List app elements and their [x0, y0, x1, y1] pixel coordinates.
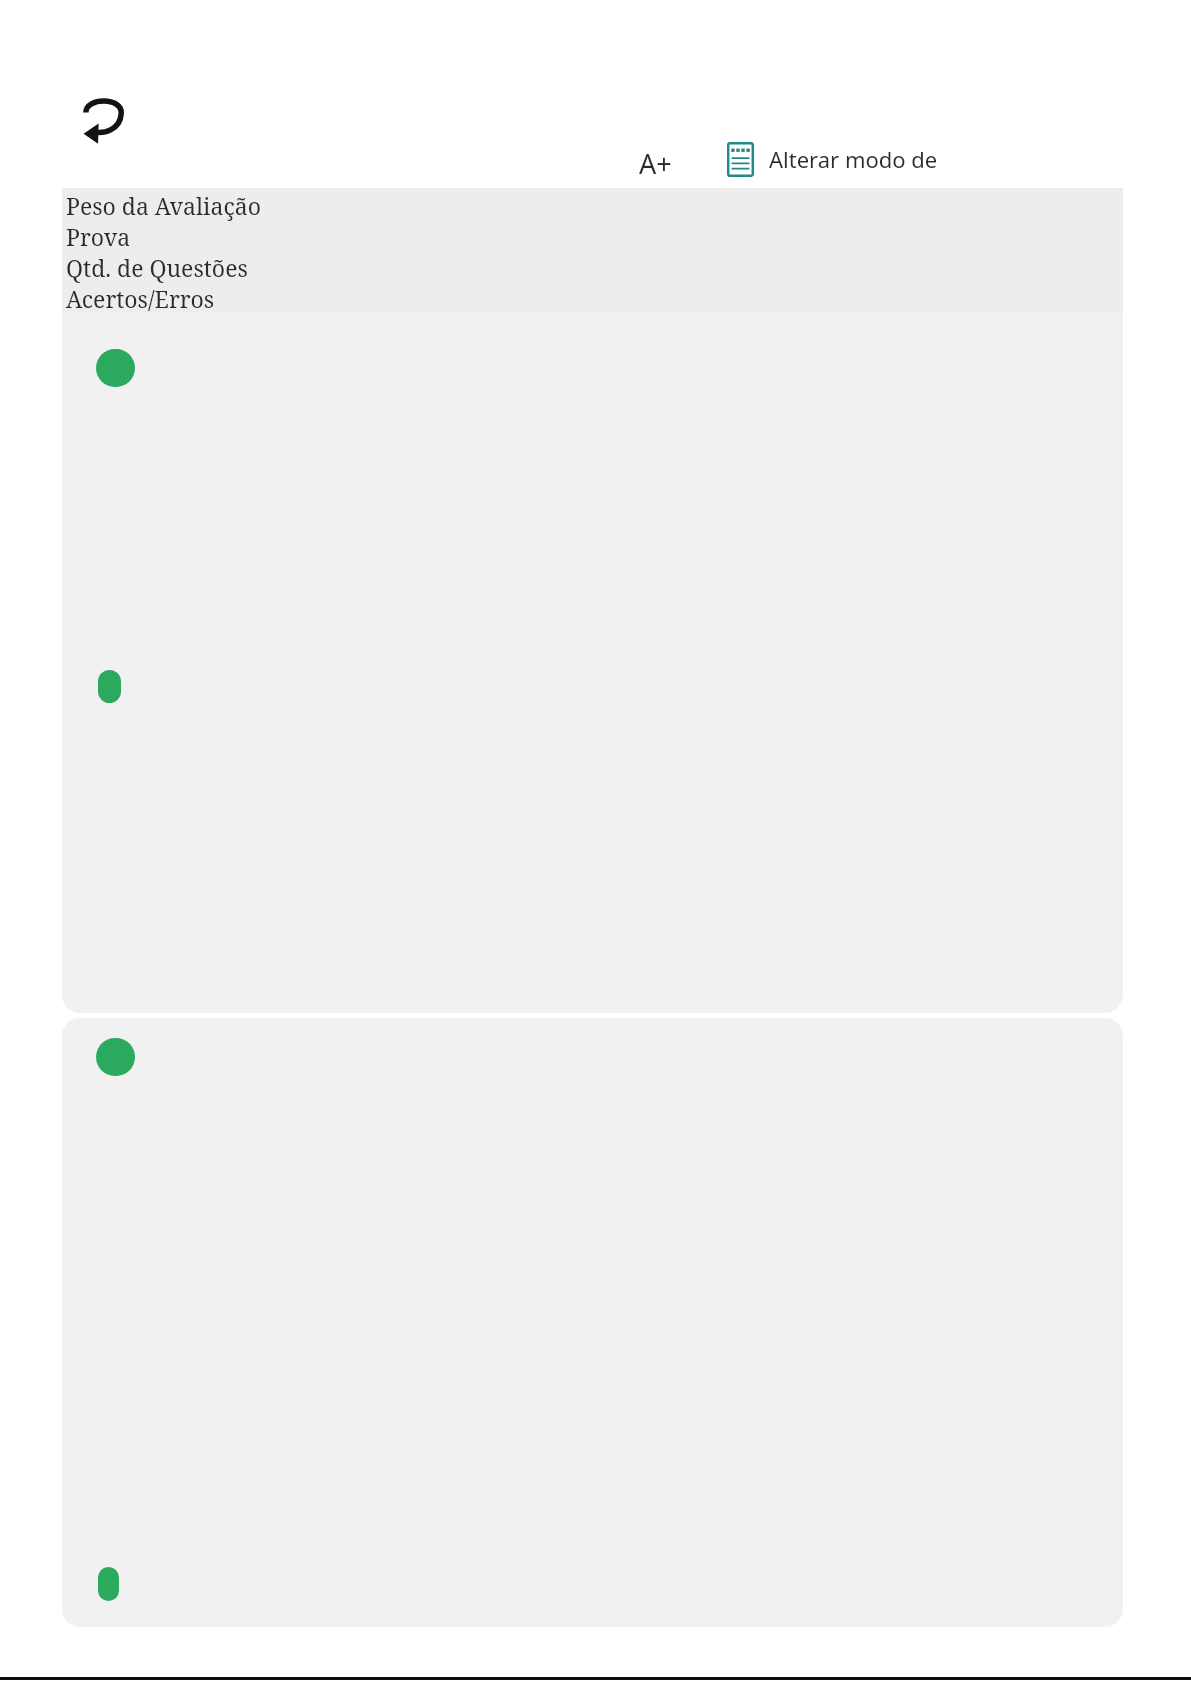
- staticText: Acertos/Erros: [66, 283, 215, 313]
- button[interactable]: Voltar: [76, 90, 134, 146]
- button[interactable]: A+: [611, 141, 700, 186]
- button[interactable]: [62, 1018, 1123, 1627]
- staticText: Peso da Avaliação: [66, 190, 261, 221]
- staticText: Prova: [66, 221, 131, 252]
- staticText: Qtd. de Questões: [66, 252, 248, 283]
- button[interactable]: Peso da Avaliação: [62, 188, 1123, 313]
- button[interactable]: Alterar modo de visualização: [708, 132, 1047, 186]
- button[interactable]: [62, 313, 1123, 1013]
- staticText: Alterar modo de visualização: [769, 144, 1039, 174]
- staticText: A+: [639, 145, 672, 182]
